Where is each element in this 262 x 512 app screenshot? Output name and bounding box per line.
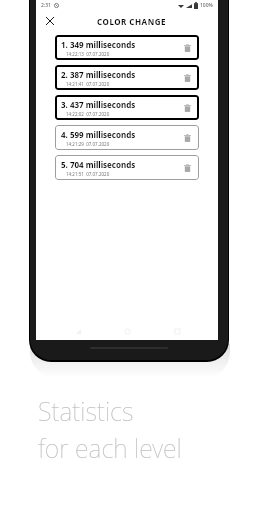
button[interactable]: 5. 704 milliseconds	[55, 155, 199, 180]
button[interactable]: 2. 387 milliseconds	[55, 65, 199, 90]
button[interactable]: Delete entry 4	[179, 130, 195, 146]
button[interactable]: 4. 599 milliseconds	[55, 125, 199, 150]
button[interactable]: 1. 349 milliseconds	[55, 35, 199, 60]
staticText: 14:21:41 07.07.2020	[66, 81, 110, 87]
staticText: 3. 437 milliseconds	[61, 99, 136, 110]
staticText: 2:31	[41, 2, 51, 9]
button[interactable]: Delete entry 3	[179, 100, 195, 116]
staticText: 1. 349 milliseconds	[61, 39, 136, 50]
button[interactable]: Delete entry 1	[179, 40, 195, 56]
staticText: 100%	[200, 2, 213, 9]
staticText: 4. 599 milliseconds	[61, 129, 136, 140]
staticText: for each level	[38, 431, 182, 465]
staticText: 14:22:13 07.07.2020	[66, 51, 110, 57]
staticText: Statistics	[38, 394, 134, 428]
staticText: 14:21:29 07.07.2020	[66, 141, 110, 147]
button[interactable]: Close	[42, 13, 58, 29]
staticText: 2. 387 milliseconds	[61, 69, 136, 80]
staticText: COLOR CHANGE	[97, 16, 166, 27]
button[interactable]: Back	[70, 323, 86, 339]
staticText: 14:22:02 07.07.2020	[66, 111, 110, 117]
staticText: 14:21:51 07.07.2020	[66, 171, 110, 177]
button[interactable]: 3. 437 milliseconds	[55, 95, 199, 120]
button[interactable]: Delete entry 5	[179, 160, 195, 176]
staticText: 5. 704 milliseconds	[61, 159, 136, 170]
button[interactable]: Delete entry 2	[179, 70, 195, 86]
